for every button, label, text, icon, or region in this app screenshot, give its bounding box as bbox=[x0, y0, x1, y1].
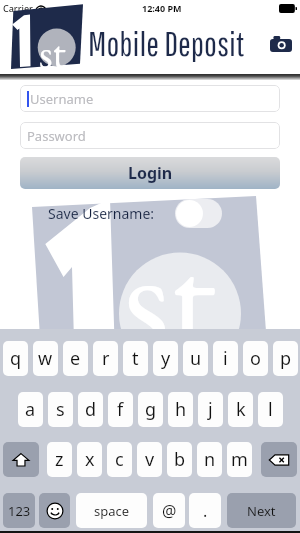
button[interactable]: Backspace bbox=[261, 442, 297, 477]
staticText: v bbox=[145, 447, 155, 472]
button[interactable]: w bbox=[33, 341, 58, 376]
staticText: . bbox=[203, 500, 208, 522]
staticText: space bbox=[94, 502, 130, 520]
staticText: l bbox=[268, 397, 273, 422]
staticText: s bbox=[56, 397, 65, 422]
staticText: Carrier bbox=[3, 2, 33, 14]
staticText: r bbox=[102, 346, 110, 371]
button[interactable]: Emoji bbox=[39, 493, 70, 528]
staticText: 12:40 PM bbox=[142, 2, 182, 14]
button[interactable]: Shift bbox=[3, 442, 39, 477]
button[interactable]: g bbox=[138, 392, 163, 427]
staticText: st bbox=[39, 26, 66, 81]
staticText: w bbox=[38, 346, 53, 371]
button[interactable]: o bbox=[243, 341, 268, 376]
staticText: j bbox=[208, 397, 213, 422]
button[interactable]: v bbox=[137, 442, 162, 477]
staticText: y bbox=[161, 346, 171, 371]
staticText: Username bbox=[30, 90, 94, 108]
staticText: u bbox=[190, 346, 202, 371]
button[interactable]: Password bbox=[20, 122, 280, 149]
staticText: b bbox=[174, 447, 186, 472]
staticText: d bbox=[85, 397, 97, 422]
button[interactable]: @ bbox=[153, 493, 185, 528]
button[interactable]: y bbox=[153, 341, 178, 376]
button[interactable]: space bbox=[76, 493, 147, 528]
button[interactable]: t bbox=[123, 341, 148, 376]
staticText: a bbox=[25, 397, 36, 422]
button[interactable]: a bbox=[18, 392, 43, 427]
button[interactable]: n bbox=[197, 442, 222, 477]
button[interactable]: 123 bbox=[3, 493, 35, 528]
staticText: h bbox=[175, 397, 187, 422]
staticText: e bbox=[70, 346, 81, 371]
staticText: o bbox=[250, 346, 261, 371]
staticText: z bbox=[55, 447, 64, 472]
staticText: Next bbox=[247, 502, 276, 520]
button[interactable]: p bbox=[273, 341, 298, 376]
button[interactable]: l bbox=[258, 392, 283, 427]
button[interactable]: q bbox=[3, 341, 28, 376]
button[interactable]: c bbox=[107, 442, 132, 477]
staticText: @ bbox=[162, 500, 177, 522]
staticText: st bbox=[122, 198, 217, 391]
button[interactable]: m bbox=[227, 442, 252, 477]
button[interactable]: z bbox=[47, 442, 72, 477]
button[interactable]: Username bbox=[20, 85, 280, 112]
button[interactable]: x bbox=[77, 442, 102, 477]
staticText: Login bbox=[128, 162, 173, 184]
button[interactable]: h bbox=[168, 392, 193, 427]
staticText: k bbox=[236, 397, 246, 422]
button[interactable]: e bbox=[63, 341, 88, 376]
staticText: c bbox=[115, 447, 124, 472]
staticText: t bbox=[132, 346, 139, 371]
staticText: q bbox=[10, 346, 22, 371]
button[interactable]: . bbox=[189, 493, 221, 528]
button[interactable]: k bbox=[228, 392, 253, 427]
staticText: Password bbox=[27, 127, 86, 145]
button[interactable]: u bbox=[183, 341, 208, 376]
staticText: x bbox=[85, 447, 95, 472]
staticText: 123 bbox=[8, 502, 31, 520]
staticText: p bbox=[280, 346, 292, 371]
staticText: f bbox=[117, 397, 124, 422]
button[interactable]: f bbox=[108, 392, 133, 427]
staticText: Mobile Deposit bbox=[88, 24, 245, 63]
button[interactable]: Next bbox=[227, 493, 296, 528]
button[interactable]: r bbox=[93, 341, 118, 376]
staticText: i bbox=[223, 346, 228, 371]
staticText: m bbox=[231, 447, 248, 472]
staticText: g bbox=[145, 397, 157, 422]
staticText: Save Username: bbox=[48, 204, 155, 223]
button[interactable]: s bbox=[48, 392, 73, 427]
button[interactable]: j bbox=[198, 392, 223, 427]
button[interactable]: Login bbox=[20, 157, 280, 189]
button[interactable]: d bbox=[78, 392, 103, 427]
button[interactable]: i bbox=[213, 341, 238, 376]
staticText: n bbox=[204, 447, 216, 472]
button[interactable]: Save Username toggle bbox=[175, 199, 222, 228]
button[interactable]: b bbox=[167, 442, 192, 477]
button[interactable]: Camera bbox=[268, 31, 294, 57]
